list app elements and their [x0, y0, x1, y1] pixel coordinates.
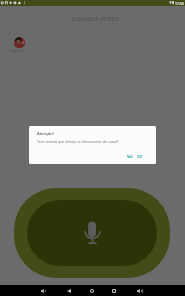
button[interactable]: Volume up	[131, 285, 149, 296]
staticText: Tem certeza que deseja se desconectar do…	[37, 139, 119, 144]
staticText: 17:04	[175, 1, 184, 6]
button[interactable]: Back	[60, 285, 78, 296]
button[interactable]: Volume down	[35, 285, 53, 296]
staticText: Atenção!	[37, 131, 54, 137]
staticText: SIM	[137, 155, 142, 159]
staticText: NÃO	[127, 155, 133, 159]
button[interactable]: Microfone	[14, 188, 170, 278]
staticText: Usuário	[10, 48, 24, 53]
button[interactable]: Recents	[105, 285, 123, 296]
button[interactable]: NÃO	[124, 150, 134, 164]
button[interactable]: Home	[83, 285, 101, 296]
button[interactable]: SIM	[134, 150, 145, 164]
button[interactable]: Usuário	[11, 34, 31, 54]
staticText: USUÁRIOS ATIVOS	[3, 16, 185, 22]
